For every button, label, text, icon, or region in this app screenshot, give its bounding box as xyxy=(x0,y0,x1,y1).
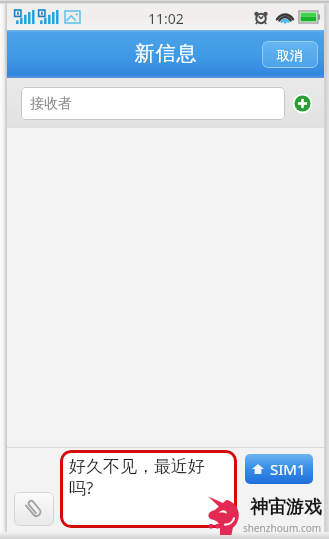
staticText: 好久不见，最近好吗? xyxy=(69,456,217,500)
button[interactable]: Add recipient xyxy=(292,93,313,114)
button[interactable]: 取消 xyxy=(262,41,318,68)
staticText: 神宙游戏 xyxy=(250,496,322,519)
staticText: 11:02 xyxy=(148,9,184,28)
staticText: shenzhoum.com xyxy=(243,521,322,535)
button[interactable]: 好久不见，最近好吗? xyxy=(60,450,237,528)
staticText: 新信息 xyxy=(134,41,197,66)
staticText: SIM1 xyxy=(270,459,306,479)
button[interactable]: 接收者 xyxy=(21,87,285,120)
staticText: 接收者 xyxy=(30,95,72,113)
button[interactable]: Attach xyxy=(14,492,54,526)
staticText: 取消 xyxy=(277,47,303,63)
button[interactable]: SIM1 xyxy=(245,454,313,484)
